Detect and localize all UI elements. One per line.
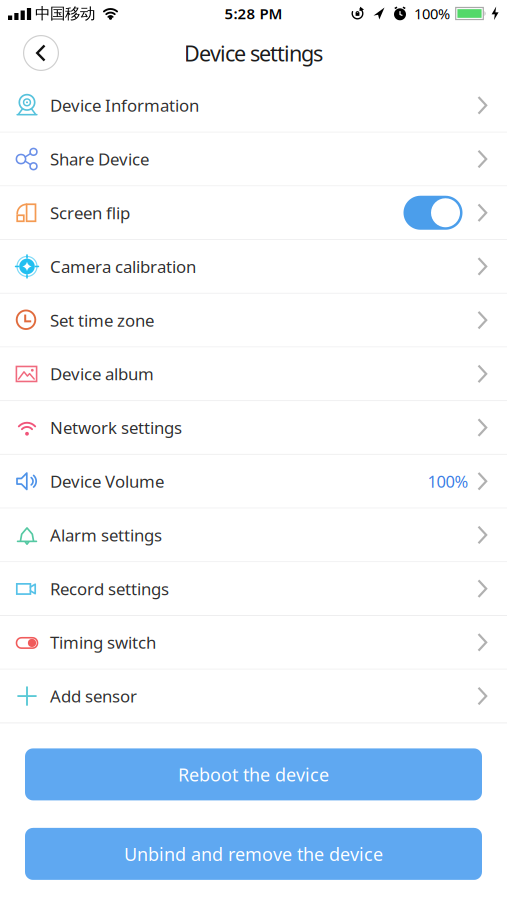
staticText: Camera calibration — [50, 255, 196, 278]
button[interactable]: Camera calibration — [0, 240, 507, 294]
button[interactable]: Device Volume — [0, 455, 507, 509]
button[interactable]: Reboot the device — [25, 748, 482, 800]
button[interactable]: Unbind and remove the device — [25, 828, 482, 880]
staticText: 5:28 PM — [224, 4, 282, 23]
button[interactable]: Network settings — [0, 401, 507, 455]
staticText: Unbind and remove the device — [124, 842, 383, 866]
staticText: Timing switch — [50, 631, 156, 653]
staticText: 中国移动 — [35, 4, 95, 23]
staticText: Device Information — [50, 94, 199, 116]
staticText: 100% — [414, 4, 450, 23]
button[interactable]: Timing switch — [0, 616, 507, 670]
staticText: Add sensor — [50, 685, 137, 707]
button[interactable]: Add sensor — [0, 670, 507, 723]
button[interactable]: Screen flip — [0, 186, 507, 240]
staticText: Set time zone — [50, 309, 154, 331]
button[interactable] — [23, 35, 59, 71]
staticText: Network settings — [50, 416, 182, 439]
staticText: Alarm settings — [50, 524, 162, 546]
button[interactable]: Device album — [0, 347, 507, 401]
staticText: Record settings — [50, 577, 169, 600]
button[interactable]: Set time zone — [0, 294, 507, 347]
staticText: Device Volume — [50, 470, 164, 492]
button[interactable]: Alarm settings — [0, 509, 507, 562]
button[interactable] — [403, 196, 462, 230]
staticText: 100% — [427, 470, 468, 492]
button[interactable]: Device Information — [0, 79, 507, 133]
staticText: Share Device — [50, 148, 149, 170]
staticText: Reboot the device — [178, 762, 329, 786]
button[interactable]: Share Device — [0, 133, 507, 186]
button[interactable]: Record settings — [0, 562, 507, 616]
staticText: Device settings — [184, 39, 323, 67]
staticText: Device album — [50, 363, 154, 385]
staticText: Screen flip — [50, 202, 130, 224]
